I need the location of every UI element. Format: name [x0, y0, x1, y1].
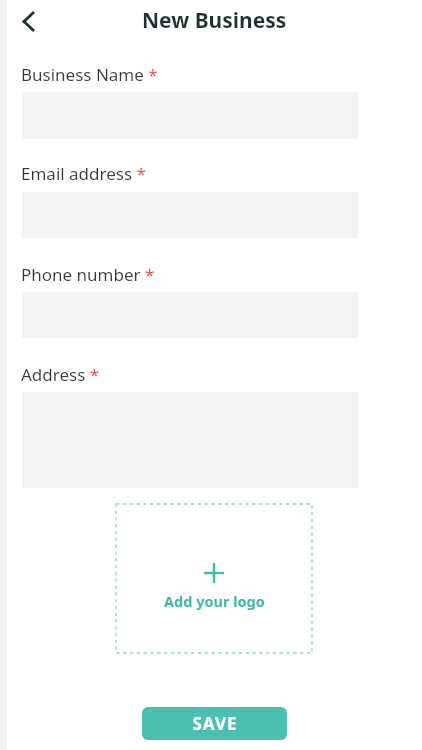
- button[interactable]: Add your logo: [116, 504, 312, 653]
- staticText: Add your logo: [164, 591, 265, 611]
- staticText: SAVE: [192, 712, 238, 735]
- staticText: New Business: [142, 6, 287, 35]
- staticText: Phone number *: [21, 263, 155, 286]
- staticText: Email address *: [21, 162, 146, 185]
- staticText: Address *: [21, 363, 100, 386]
- staticText: Business Name *: [21, 63, 158, 86]
- button[interactable]: SAVE: [142, 707, 287, 740]
- button[interactable]: [12, 5, 44, 37]
